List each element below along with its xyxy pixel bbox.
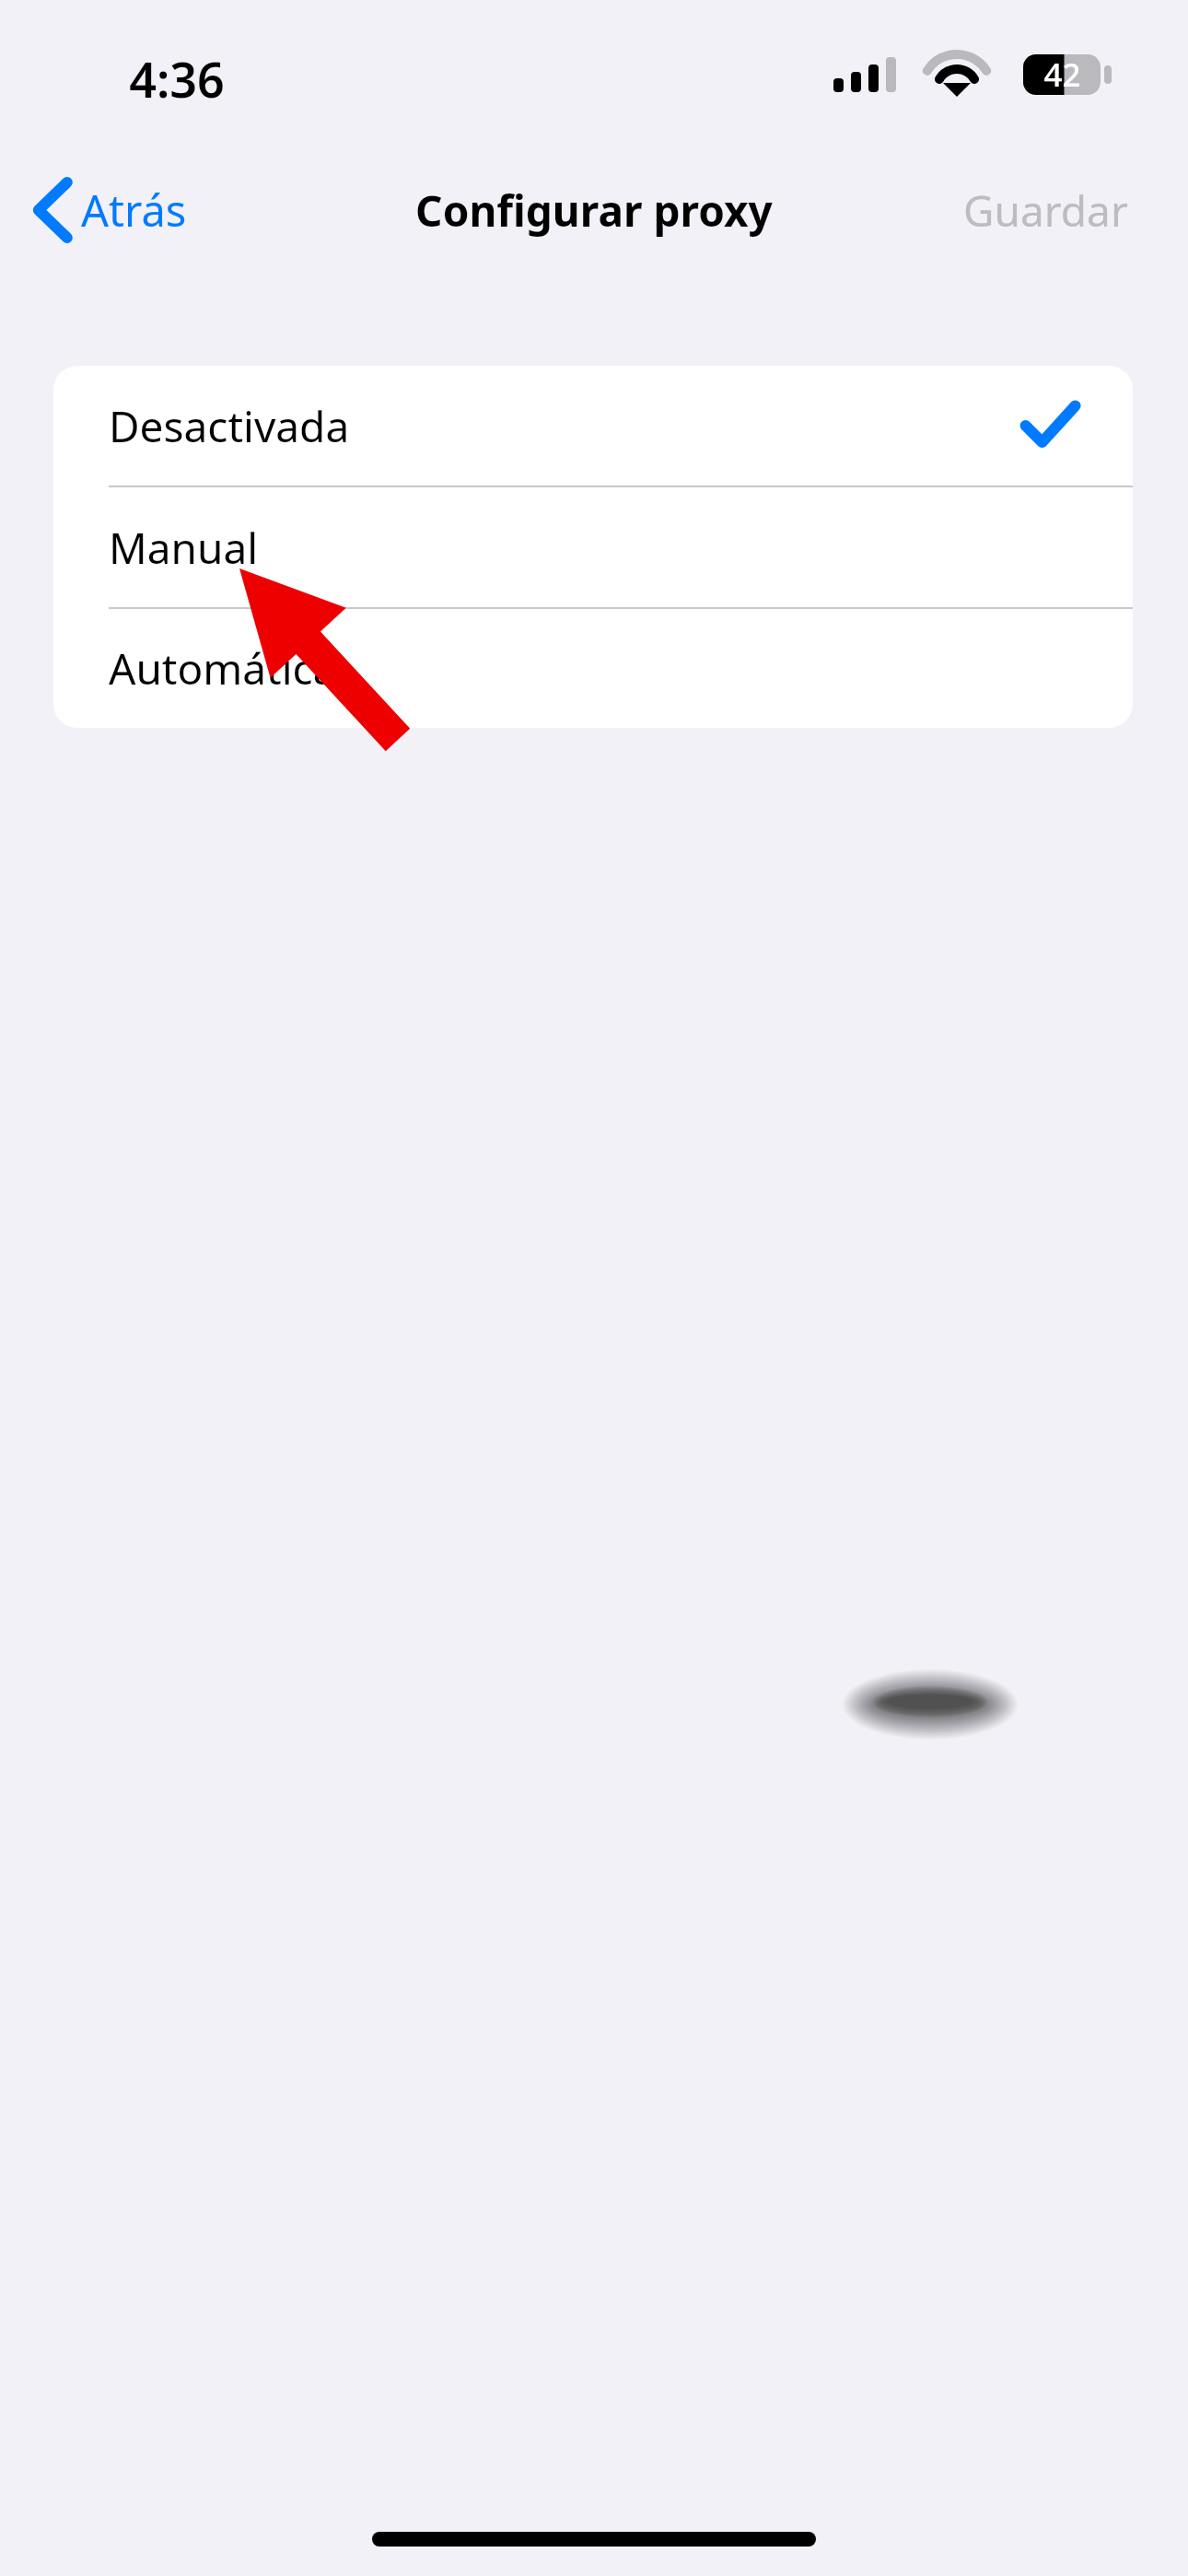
staticText: 42	[1043, 53, 1081, 97]
staticText: Manual	[109, 519, 259, 577]
staticText: Automática	[109, 639, 337, 697]
button[interactable]: Manual	[53, 487, 1133, 607]
button[interactable]: Desactivada	[53, 366, 1133, 486]
other: Arrow pointing to Manual	[212, 548, 442, 765]
staticText: Guardar	[963, 181, 1128, 240]
button[interactable]: Guardar	[944, 166, 1147, 254]
button[interactable]: Automática	[53, 609, 1133, 728]
button[interactable]: Atrás	[26, 166, 224, 254]
staticText: 4:36	[129, 46, 225, 103]
staticText: Desactivada	[109, 397, 350, 455]
staticText: Atrás	[81, 181, 187, 240]
staticText: Configurar proxy	[415, 181, 773, 240]
